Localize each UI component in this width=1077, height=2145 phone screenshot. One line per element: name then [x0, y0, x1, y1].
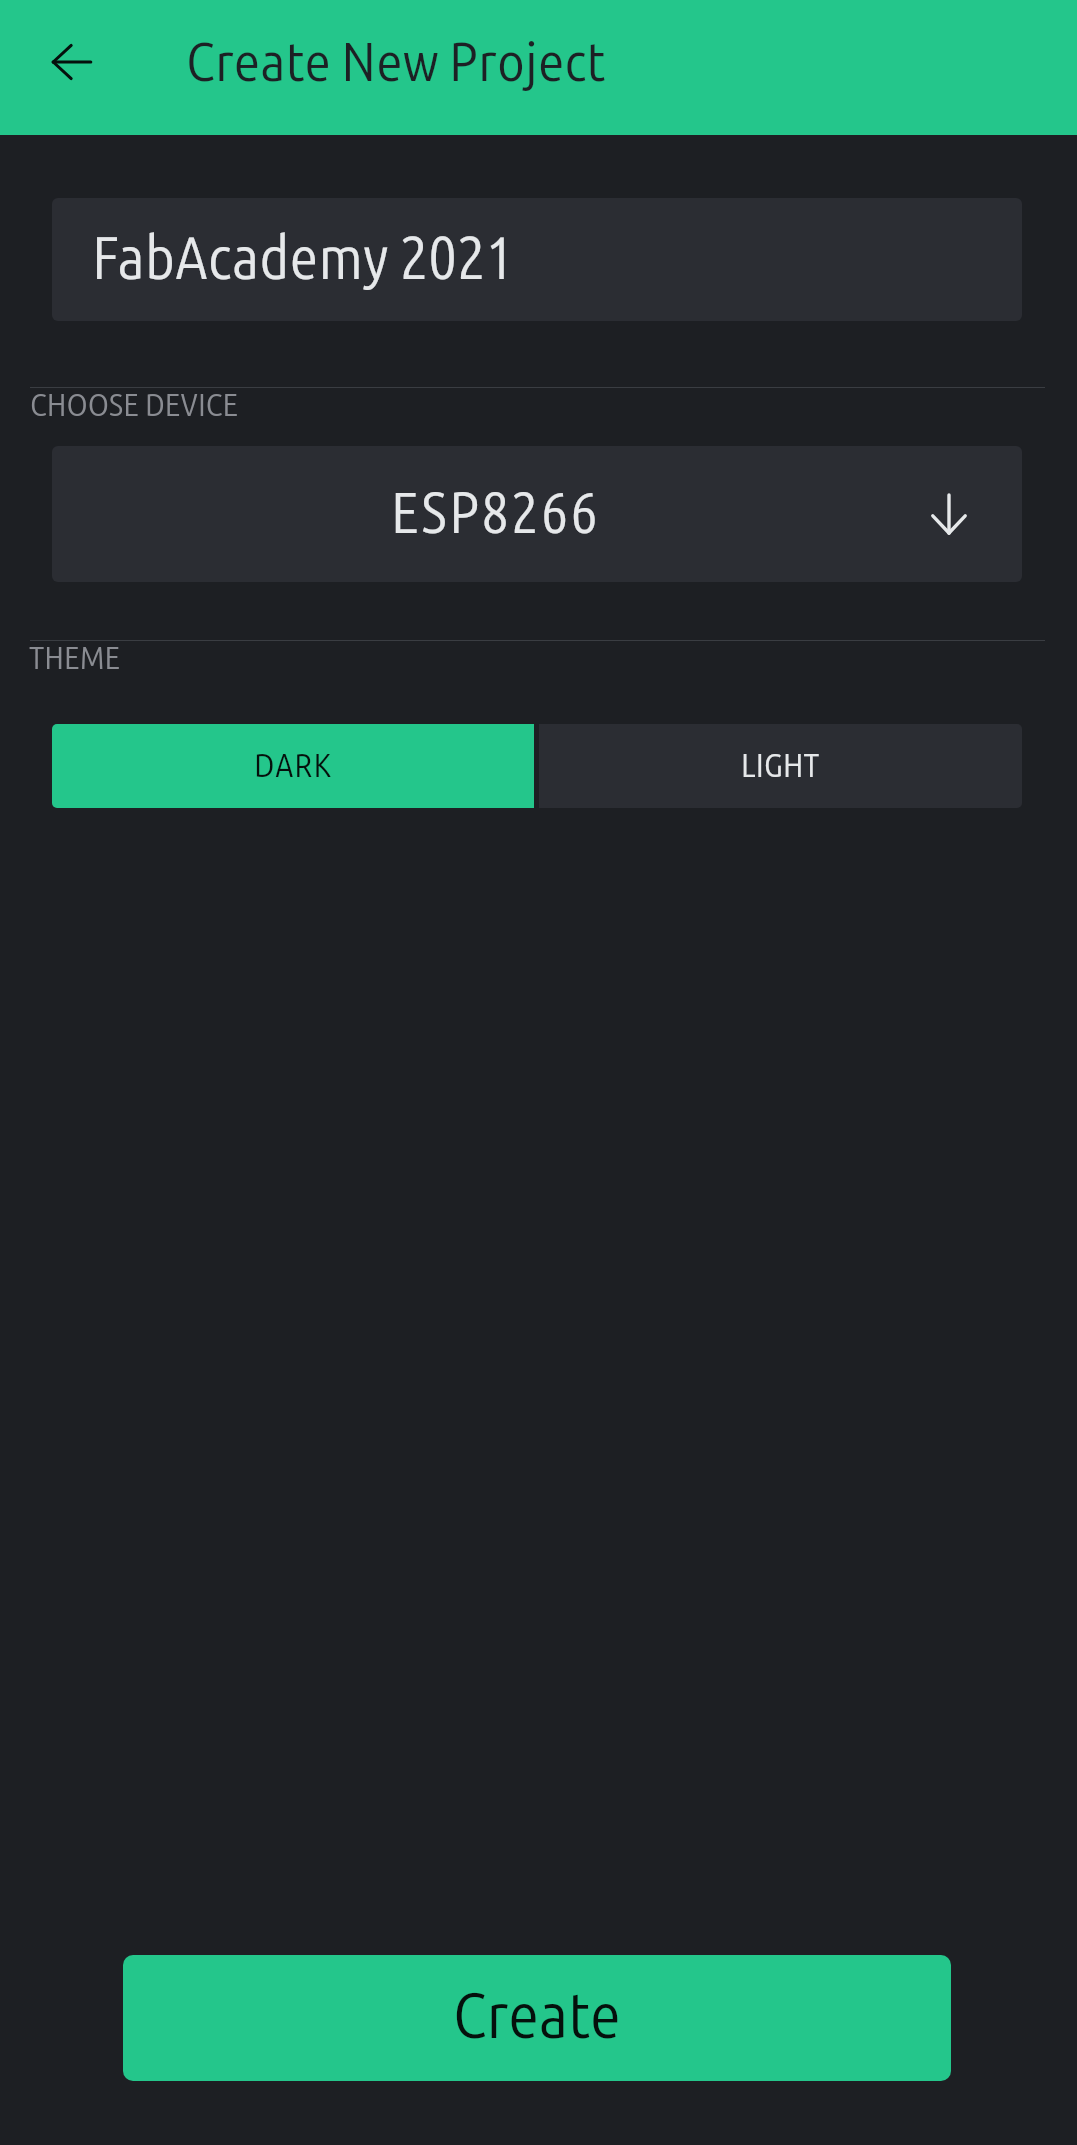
staticText: Create New Project: [186, 30, 606, 92]
staticText: LIGHT: [741, 746, 820, 783]
staticText: DARK: [254, 746, 333, 783]
button[interactable]: Back: [24, 14, 120, 110]
button[interactable]: FabAcademy 2021: [52, 198, 1022, 321]
staticText: ESP8266: [391, 480, 601, 544]
staticText: CHOOSE DEVICE: [30, 386, 239, 422]
button[interactable]: LIGHT: [539, 724, 1022, 808]
button[interactable]: ESP8266: [52, 446, 1022, 582]
staticText: THEME: [29, 639, 121, 675]
button[interactable]: DARK: [52, 724, 534, 808]
staticText: Create: [453, 1978, 621, 2050]
button[interactable]: Create: [123, 1955, 951, 2081]
staticText: FabAcademy 2021: [92, 224, 515, 290]
button[interactable]: Expand device list: [925, 490, 973, 538]
